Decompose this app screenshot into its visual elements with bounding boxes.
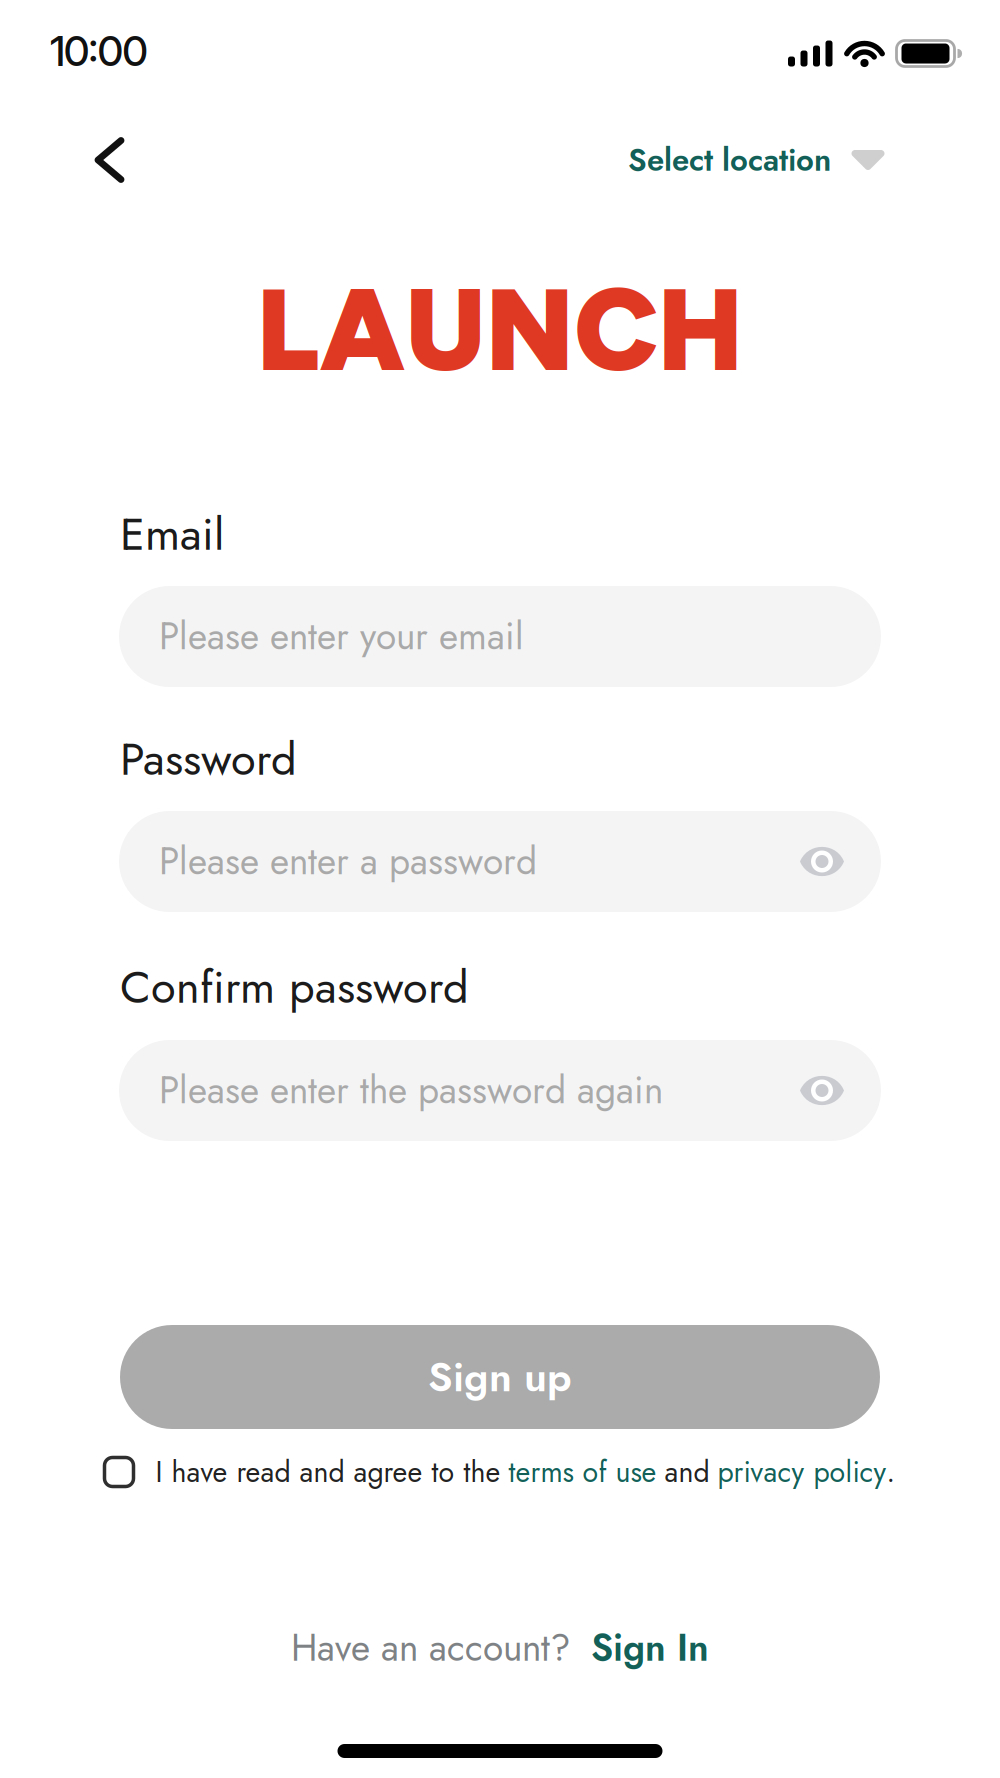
staticText: Email	[120, 501, 224, 566]
staticText: privacy policy	[717, 1451, 886, 1493]
button[interactable]: Sign up	[120, 1325, 880, 1429]
staticText: and	[664, 1451, 709, 1493]
staticText: I have read and agree to the	[155, 1451, 500, 1493]
staticText: 10:00	[50, 26, 148, 76]
staticText: terms of use	[508, 1451, 656, 1493]
staticText: Password	[120, 726, 297, 791]
button[interactable]: Show password	[799, 845, 845, 877]
staticText: LAUNCH	[256, 261, 743, 399]
staticText: Please enter your email	[159, 610, 524, 663]
button[interactable]: Back	[93, 136, 127, 183]
button[interactable]: terms of use	[508, 1451, 656, 1493]
button[interactable]: Select location	[628, 138, 885, 182]
staticText: Select location	[628, 138, 831, 182]
staticText: Please enter the password again	[159, 1064, 663, 1117]
staticText: .	[886, 1451, 895, 1493]
button[interactable]: privacy policy	[717, 1451, 886, 1493]
staticText: Please enter a password	[159, 835, 537, 888]
staticText: Sign up	[428, 1347, 572, 1407]
staticText: Have an account?	[291, 1621, 571, 1675]
button[interactable]: Agree to terms	[104, 1457, 133, 1486]
staticText: Confirm password	[120, 954, 469, 1019]
staticText: Sign In	[591, 1621, 709, 1675]
button[interactable]: Sign In	[591, 1621, 709, 1675]
button[interactable]: Show password	[799, 1074, 845, 1106]
